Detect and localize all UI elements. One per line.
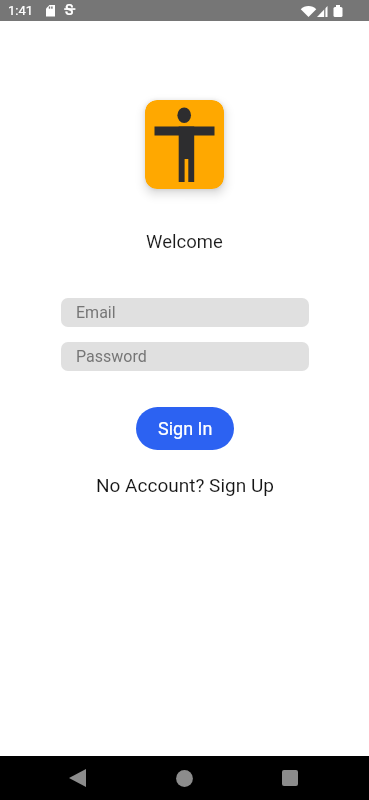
button[interactable]: Sign In: [136, 407, 234, 450]
staticText: 1:41: [8, 3, 34, 18]
button[interactable]: [59, 760, 95, 796]
staticText: S: [65, 2, 74, 18]
staticText: Welcome: [146, 231, 223, 253]
staticText: Password: [76, 347, 147, 366]
staticText: Email: [76, 303, 116, 322]
button[interactable]: Email: [61, 298, 309, 327]
staticText: Sign In: [158, 418, 213, 439]
button[interactable]: Password: [61, 342, 309, 371]
button[interactable]: No Account? Sign Up: [96, 474, 274, 496]
button[interactable]: [272, 760, 308, 796]
button[interactable]: [166, 760, 202, 796]
